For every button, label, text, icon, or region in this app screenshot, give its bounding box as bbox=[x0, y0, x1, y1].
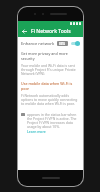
staticText: appears in the status bar when the Proje… bbox=[27, 112, 80, 129]
button[interactable]: Enhance network toggle bbox=[71, 41, 80, 46]
button[interactable]: Enhance network bbox=[21, 40, 80, 47]
staticText: Fi Network automatically adds options to… bbox=[21, 93, 80, 106]
staticText: Your mobile and Wi-Fi data is sent throu… bbox=[21, 63, 80, 76]
button[interactable]: Use mobile data when Wi-Fi is poor bbox=[21, 81, 80, 106]
staticText: Enhance network bbox=[21, 41, 55, 46]
staticText: Get more privacy and more security bbox=[21, 51, 80, 61]
staticText: Fi Network Tools bbox=[31, 28, 71, 35]
button[interactable]: appears in the status bar when the Proje… bbox=[21, 112, 80, 134]
button[interactable]: Get more privacy and more security bbox=[21, 51, 80, 76]
button[interactable]: Back bbox=[21, 28, 28, 35]
staticText: Use mobile data when Wi-Fi is poor bbox=[21, 81, 80, 91]
staticText: BETA bbox=[59, 42, 66, 45]
staticText: Learn more bbox=[27, 129, 46, 134]
